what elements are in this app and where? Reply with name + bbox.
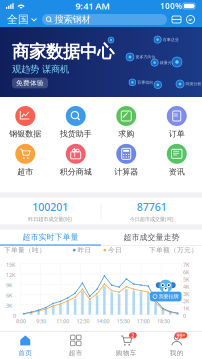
staticText: 购物车 — [116, 349, 137, 357]
staticText: 今日 — [108, 246, 122, 254]
button[interactable]: 2 — [101, 334, 151, 357]
staticText: 同类分析 — [185, 81, 201, 86]
staticText: 百事动向 — [137, 80, 153, 85]
staticText: 搜索钢材 — [54, 14, 90, 25]
staticText: 12:30 — [76, 318, 89, 325]
staticText: 6K — [6, 292, 12, 299]
staticText: 4K — [183, 283, 189, 290]
staticText: 首页 — [18, 349, 32, 357]
staticText: 免费体验 — [16, 79, 44, 87]
staticText: 15:30 — [117, 318, 130, 325]
staticText: 超市实时下单量 — [22, 232, 78, 242]
staticText: 求购 — [118, 129, 134, 139]
button[interactable]: 87761 — [101, 200, 202, 222]
staticText: 11:00 — [56, 318, 69, 325]
staticText: 观趋势 — [12, 63, 39, 75]
staticText: 7K — [183, 261, 189, 268]
staticText: 就量分析 — [160, 60, 176, 65]
staticText: 百事达业 — [163, 37, 179, 42]
staticText: 100201 — [32, 200, 68, 214]
staticText: 0 — [13, 312, 16, 319]
button[interactable]: 百事达业 — [0, 27, 202, 97]
staticText: 17:00 — [137, 318, 150, 325]
staticText: 我的 — [170, 349, 184, 357]
staticText: 6K — [183, 268, 189, 276]
staticText: 87761 — [137, 200, 167, 214]
button[interactable]: 超市成交量走势 — [101, 230, 202, 246]
staticText: 今日超市成交量(吨) — [130, 215, 174, 222]
button[interactable]: 首页 — [0, 334, 50, 357]
staticText: 更多方向位 — [135, 54, 155, 59]
staticText: 3K — [6, 302, 12, 309]
staticText: 9K — [6, 282, 12, 289]
staticText: 昨日 — [77, 246, 91, 254]
staticText: 下单量（吨） — [4, 246, 46, 254]
staticText: 8:00 — [16, 318, 26, 325]
staticText: 全国 — [7, 13, 29, 26]
staticText: 15K — [6, 261, 15, 268]
staticText: 超市成交量走势 — [123, 232, 179, 242]
staticText: 0 — [183, 312, 186, 319]
staticText: 14:00 — [96, 318, 109, 325]
button[interactable]: 消息 — [186, 15, 195, 24]
button[interactable]: 找货助手 — [50, 106, 101, 139]
button[interactable]: 钢银数据 — [0, 106, 50, 139]
button[interactable]: 99+ — [151, 334, 202, 357]
button[interactable]: 搜索钢材 — [42, 14, 167, 25]
staticText: 计算器 — [114, 167, 138, 177]
staticText: 5K — [183, 276, 189, 283]
staticText: 订单 — [169, 129, 185, 139]
staticText: 找货助手 — [60, 129, 92, 139]
button[interactable]: 我要挂牌 — [150, 279, 181, 301]
button[interactable]: 全国 — [7, 13, 37, 26]
staticText: 超市 — [69, 349, 83, 357]
button[interactable]: 100201 — [0, 200, 101, 222]
button[interactable]: 求购 — [101, 106, 151, 139]
button[interactable]: 超市 — [0, 144, 50, 177]
staticText: 1K — [183, 305, 189, 312]
button[interactable]: 计算器 — [101, 144, 151, 177]
staticText: 商家数据中心 — [12, 41, 114, 62]
staticText: 12K — [6, 271, 15, 279]
staticText: 昨日超市成交量(吨) — [28, 215, 72, 222]
staticText: 100% — [160, 1, 182, 11]
staticText: 18:30 — [157, 318, 170, 325]
staticText: 下单额（万元） — [149, 246, 198, 254]
staticText: 9:41 AM — [75, 0, 110, 12]
staticText: 99+ — [176, 332, 185, 339]
staticText: 谋商机 — [42, 63, 69, 75]
staticText: 资讯 — [169, 167, 185, 177]
button[interactable]: 超市实时下单量 — [0, 230, 101, 246]
button[interactable]: 订单 — [151, 106, 202, 139]
button[interactable]: 扫一扫 — [172, 15, 181, 24]
button[interactable]: 超市 — [50, 334, 101, 357]
staticText: 钢银数据 — [9, 129, 41, 139]
staticText: 2K — [183, 298, 189, 305]
staticText: 9:30 — [36, 318, 46, 325]
button[interactable]: 资讯 — [151, 144, 202, 177]
button[interactable]: 积分商城 — [50, 144, 101, 177]
staticText: 我要挂牌 — [158, 293, 178, 300]
staticText: 超市 — [17, 167, 33, 177]
staticText: 3K — [183, 290, 189, 297]
staticText: 积分商城 — [60, 167, 92, 177]
staticText: 2 — [131, 332, 134, 339]
